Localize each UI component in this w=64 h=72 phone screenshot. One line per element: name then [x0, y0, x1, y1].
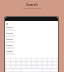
button[interactable] — [5, 44, 58, 50]
button[interactable]: Keyboard — [5, 58, 58, 72]
button[interactable] — [5, 21, 58, 26]
button[interactable]: Search field — [5, 17, 58, 21]
staticText: Search — [26, 2, 38, 7]
button[interactable] — [5, 38, 58, 44]
button[interactable] — [5, 32, 58, 38]
button[interactable] — [5, 26, 58, 32]
button[interactable] — [5, 50, 58, 56]
staticText: search users & chats — [23, 7, 42, 10]
